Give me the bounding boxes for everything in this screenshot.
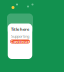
button[interactable]: Continue — [10, 39, 30, 43]
staticText: Supporting copy — [11, 33, 29, 44]
staticText: Continue — [10, 39, 29, 44]
staticText: Title here — [11, 26, 29, 32]
